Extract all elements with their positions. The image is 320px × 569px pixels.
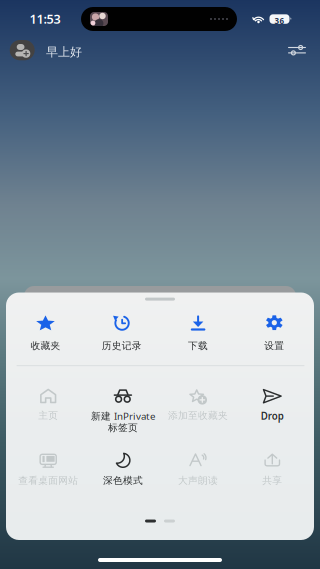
- button[interactable]: 深色模式: [85, 438, 161, 504]
- staticText: 深色模式: [103, 474, 143, 487]
- button[interactable]: Account: [10, 40, 35, 60]
- staticText: Drop: [261, 409, 284, 423]
- button[interactable]: 主页: [10, 373, 86, 439]
- button[interactable]: 设置: [236, 300, 312, 366]
- staticText: 收藏夹: [30, 340, 60, 352]
- staticText: 查看桌面网站: [18, 474, 78, 487]
- button[interactable]: 收藏夹: [7, 300, 83, 366]
- button[interactable]: 查看桌面网站: [10, 438, 86, 504]
- staticText: 早上好: [46, 44, 82, 60]
- staticText: 添加至收藏夹: [168, 409, 228, 422]
- staticText: 大声朗读: [178, 474, 218, 487]
- staticText: 11:53: [29, 10, 60, 27]
- button[interactable]: 共享: [234, 438, 310, 504]
- staticText: 下载: [188, 340, 208, 352]
- staticText: 共享: [262, 474, 282, 487]
- staticText: 标签页: [108, 422, 138, 434]
- staticText: 新建 InPrivate: [91, 409, 155, 423]
- button[interactable]: Settings: [285, 40, 309, 60]
- button[interactable]: Drop: [234, 373, 310, 439]
- staticText: 36: [274, 15, 284, 26]
- button[interactable]: 添加至收藏夹: [160, 373, 236, 439]
- button[interactable]: 下载: [160, 300, 236, 366]
- button[interactable]: 历史记录: [84, 300, 160, 366]
- staticText: 主页: [38, 409, 58, 422]
- button[interactable]: 大声朗读: [160, 438, 236, 504]
- staticText: 历史记录: [102, 340, 142, 352]
- button[interactable]: 新建 InPrivate: [85, 373, 161, 439]
- staticText: 设置: [264, 340, 284, 352]
